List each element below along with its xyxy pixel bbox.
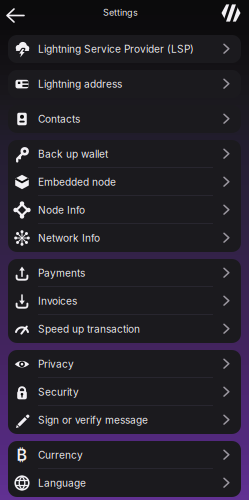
button[interactable]: Privacy [8,350,241,378]
staticText: ₿ [16,445,27,465]
staticText: Lightning Service Provider (LSP) [38,43,194,55]
staticText: Currency [38,449,83,461]
staticText: Invoices [38,295,77,307]
button[interactable]: Back up wallet [8,140,241,168]
button[interactable]: Node Info [8,196,241,224]
button[interactable]: Security [8,378,241,406]
staticText: Security [38,386,79,398]
button[interactable]: Speed up transaction [8,315,241,343]
staticText: Privacy [38,358,74,370]
button[interactable]: Lightning address [8,70,241,98]
staticText: Lightning address [38,78,122,90]
button[interactable]: Contacts [8,105,241,133]
button[interactable]: ₿ [8,441,241,469]
button[interactable]: Sign or verify message [8,406,241,434]
button[interactable]: Embedded node [8,168,241,196]
staticText: Speed up transaction [38,323,140,335]
button[interactable]: Invoices [8,287,241,315]
staticText: Sign or verify message [38,414,148,426]
staticText: Back up wallet [38,148,108,160]
button[interactable]: Language [8,469,241,497]
button[interactable]: Lightning Service Provider (LSP) [8,35,241,63]
button[interactable]: Network Info [8,224,241,252]
button[interactable]: Payments [8,259,241,287]
staticText: Payments [38,267,85,279]
staticText: Network Info [38,232,100,244]
staticText: Settings [103,7,138,18]
staticText: Node Info [38,204,85,216]
staticText: Contacts [38,113,80,125]
button[interactable]: Back [0,6,27,24]
staticText: Language [38,477,86,489]
staticText: Embedded node [38,176,116,188]
